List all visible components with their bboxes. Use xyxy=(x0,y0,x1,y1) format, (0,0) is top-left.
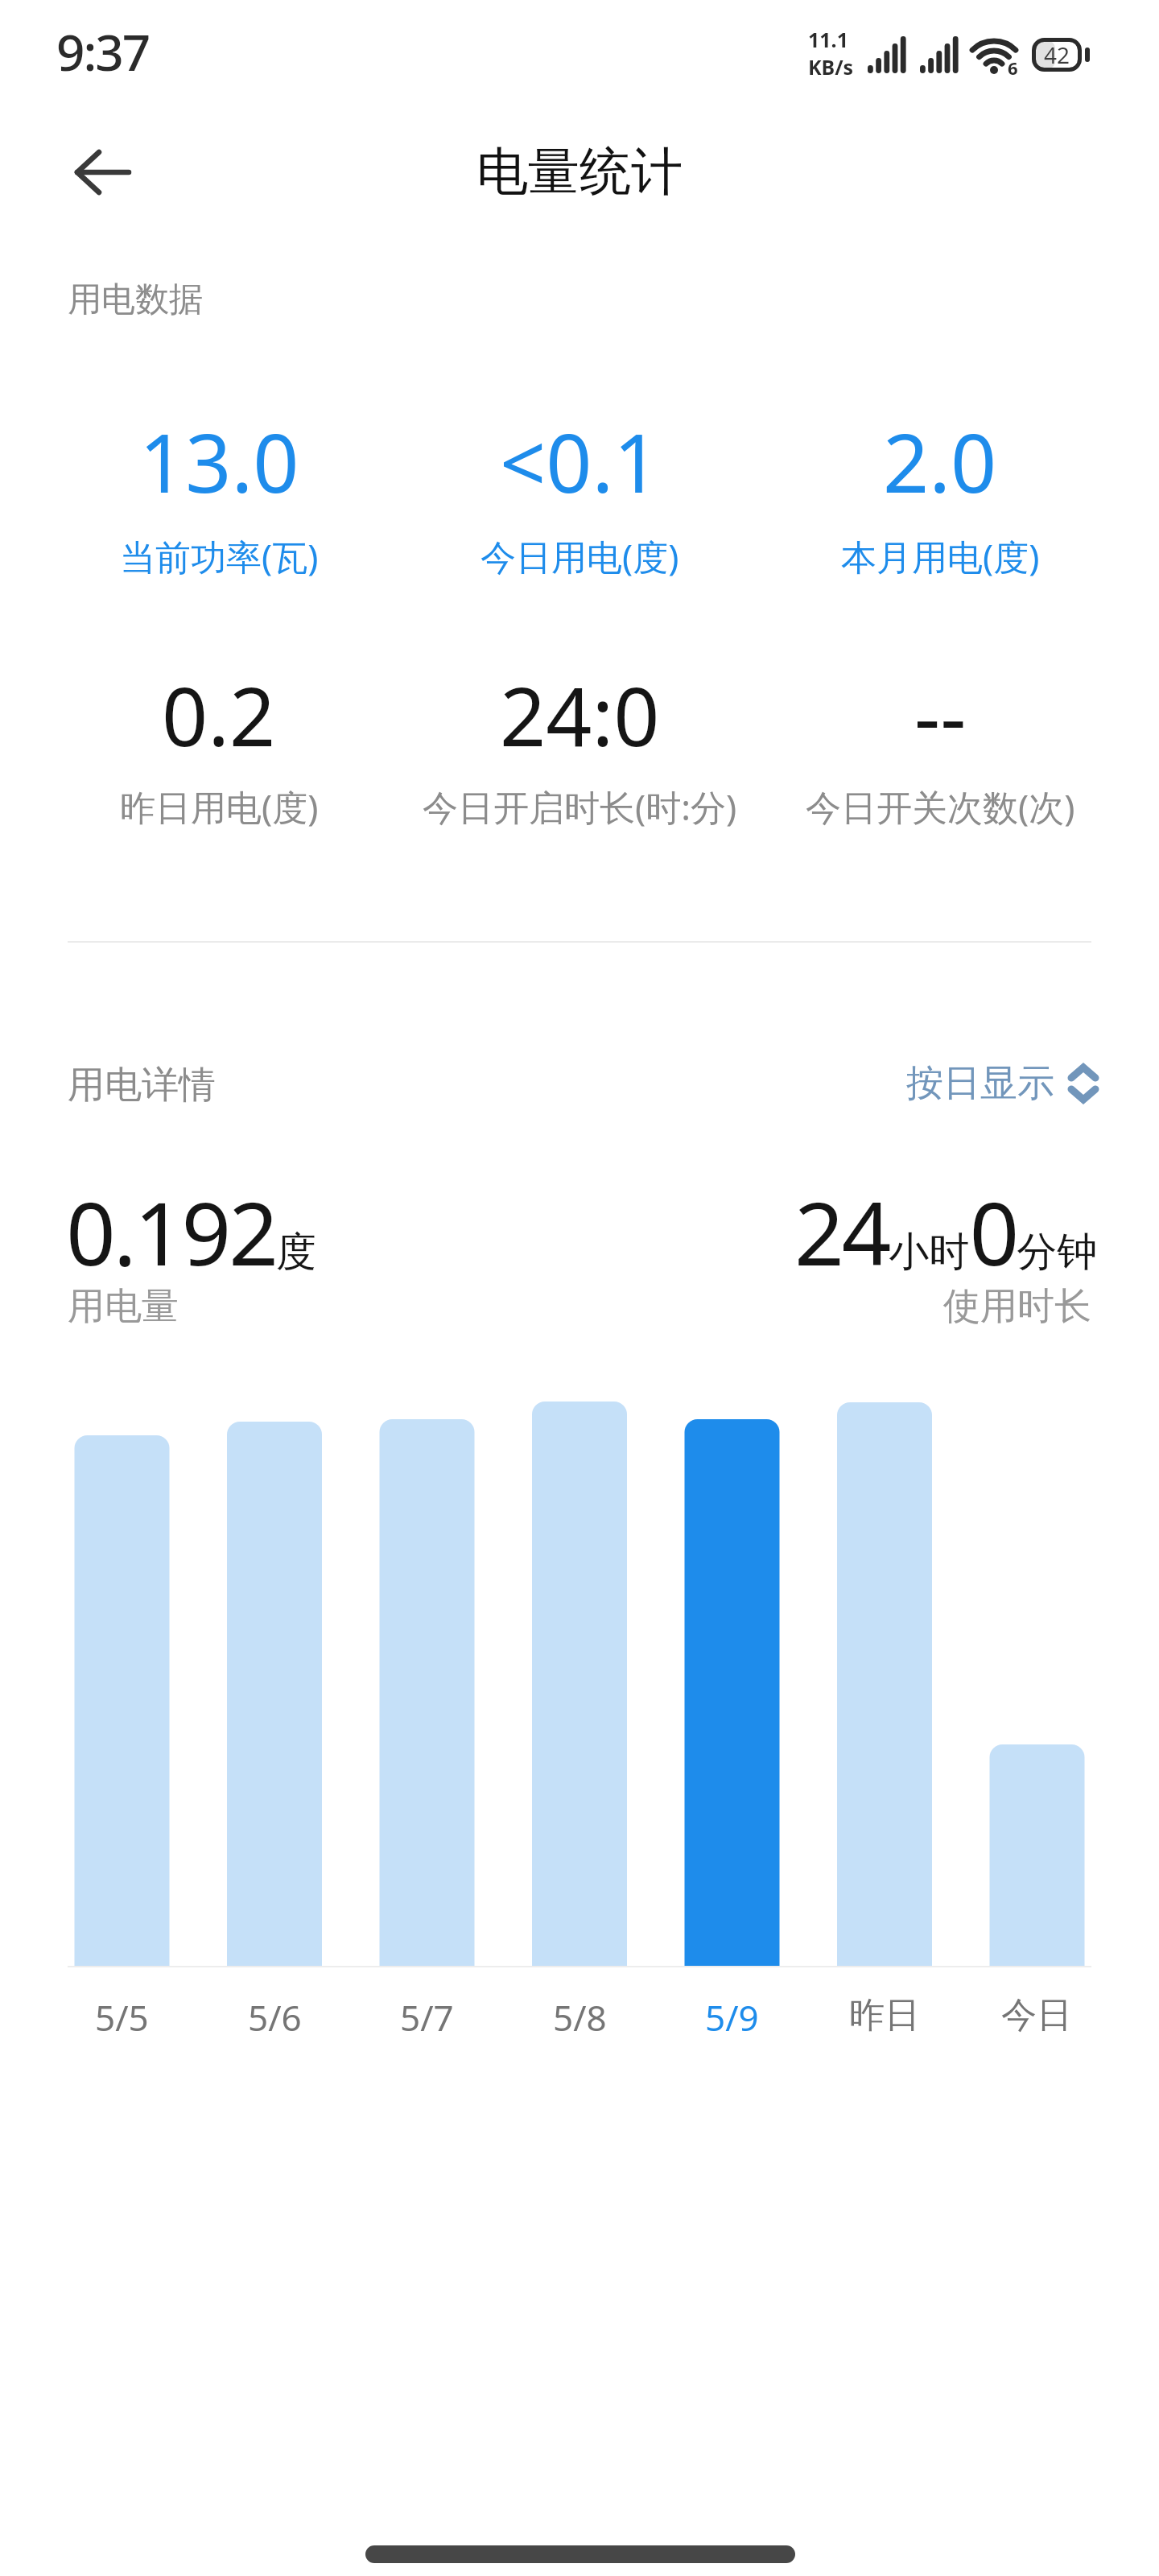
staticText: 使用时长 xyxy=(943,1283,1091,1330)
staticText: 24:0 xyxy=(500,660,660,770)
staticText: 0.192度 xyxy=(66,1173,317,1291)
staticText: 今日 xyxy=(1001,1993,1072,2037)
staticText: 昨日 xyxy=(849,1993,920,2037)
button[interactable]: 按日显示 xyxy=(906,1060,1099,1107)
staticText: 2.0 xyxy=(883,407,997,516)
staticText: 5/9 xyxy=(705,1993,759,2041)
staticText: 42 xyxy=(1044,39,1070,70)
staticText: 昨日用电(度) xyxy=(120,782,319,831)
staticText: KB/s xyxy=(808,53,854,80)
staticText: <0.1 xyxy=(500,407,660,516)
staticText: 今日开启时长(时:分) xyxy=(423,782,737,831)
staticText: 用电详情 xyxy=(68,1062,216,1108)
staticText: 今日开关次数(次) xyxy=(806,782,1075,831)
staticText: 当前功率(瓦) xyxy=(120,532,319,580)
staticText: 5/5 xyxy=(95,1993,149,2041)
staticText: 今日用电(度) xyxy=(481,532,679,580)
staticText: 6 xyxy=(1008,56,1018,80)
staticText: 9:37 xyxy=(56,18,150,85)
staticText: 用电数据 xyxy=(68,279,203,321)
staticText: 5/7 xyxy=(400,1993,454,2041)
staticText: 5/8 xyxy=(553,1993,607,2041)
staticText: 本月用电(度) xyxy=(841,532,1040,580)
staticText: 用电量 xyxy=(68,1283,179,1330)
staticText: -- xyxy=(914,660,967,770)
staticText: 11.1 xyxy=(808,26,848,53)
staticText: 0.2 xyxy=(162,660,276,770)
staticText: 13.0 xyxy=(139,407,299,516)
staticText: 24小时0分钟 xyxy=(794,1173,1098,1291)
button[interactable] xyxy=(76,151,130,194)
staticText: 按日显示 xyxy=(906,1060,1054,1107)
staticText: 5/6 xyxy=(248,1993,302,2041)
staticText: 电量统计 xyxy=(476,139,683,204)
